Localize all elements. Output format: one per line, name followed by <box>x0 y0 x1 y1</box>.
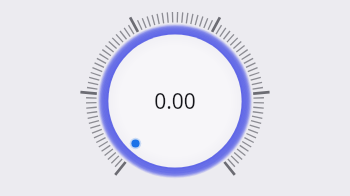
staticText: 0.00 <box>135 87 215 115</box>
button[interactable]: Measurement dial, value 0.00 <box>105 31 245 171</box>
